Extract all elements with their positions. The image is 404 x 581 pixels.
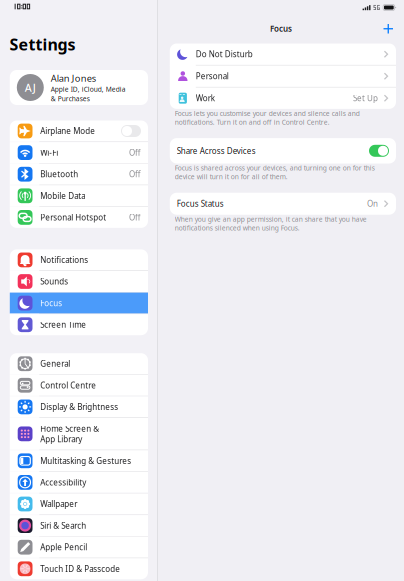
staticText: Off bbox=[129, 212, 141, 223]
button[interactable]: Personal Hotspot bbox=[10, 207, 148, 228]
staticText: Wallpaper bbox=[40, 499, 77, 509]
button[interactable]: Siri & Search bbox=[10, 515, 148, 536]
staticText: Mobile Data bbox=[40, 190, 85, 201]
button[interactable]: Do Not Disturb bbox=[170, 43, 396, 65]
button[interactable]: General bbox=[10, 353, 148, 374]
staticText: Focus lets you customise your devices an… bbox=[175, 109, 360, 127]
staticText: Wi-Fi bbox=[40, 147, 58, 158]
button[interactable]: Share Across Devices bbox=[170, 138, 396, 163]
staticText: Share Across Devices bbox=[177, 145, 256, 156]
button[interactable]: Personal bbox=[170, 65, 396, 87]
button[interactable]: Screen Time bbox=[10, 314, 148, 335]
staticText: AJ bbox=[25, 80, 36, 95]
button[interactable]: Multitasking & Gestures bbox=[10, 450, 148, 471]
button[interactable]: Add Focus bbox=[378, 19, 398, 38]
staticText: Focus Status bbox=[177, 198, 224, 209]
staticText: Focus bbox=[40, 298, 62, 308]
staticText: Alan Jones bbox=[51, 72, 96, 84]
staticText: Apple ID, iCloud, Media bbox=[51, 85, 126, 94]
staticText: Off bbox=[129, 169, 141, 179]
button[interactable]: Bluetooth bbox=[10, 164, 148, 185]
staticText: Set Up bbox=[353, 93, 378, 103]
staticText: Touch ID & Passcode bbox=[40, 563, 120, 574]
button[interactable]: Sounds bbox=[10, 271, 148, 292]
staticText: Personal bbox=[196, 71, 229, 81]
staticText: App Library bbox=[40, 434, 82, 444]
staticText: Multitasking & Gestures bbox=[40, 455, 131, 466]
button[interactable]: Focus bbox=[10, 293, 148, 314]
button[interactable]: Display & Brightness bbox=[10, 396, 148, 417]
staticText: Siri & Search bbox=[40, 520, 86, 531]
button[interactable]: Home Screen & bbox=[10, 418, 148, 450]
staticText: Bluetooth bbox=[40, 169, 78, 179]
button[interactable]: Focus Status bbox=[170, 193, 396, 215]
staticText: Focus is shared across your devices, and… bbox=[175, 163, 375, 181]
button[interactable]: Airplane Mode bbox=[10, 120, 148, 141]
staticText: Accessibility bbox=[40, 477, 86, 488]
staticText: General bbox=[40, 358, 70, 369]
staticText: Settings bbox=[9, 34, 75, 55]
button[interactable]: Touch ID & Passcode bbox=[10, 558, 148, 579]
button[interactable]: Control Centre bbox=[10, 375, 148, 396]
button[interactable]: Apple Pencil bbox=[10, 537, 148, 558]
staticText: When you give an app permission, it can … bbox=[175, 215, 367, 232]
staticText: Apple Pencil bbox=[40, 542, 87, 552]
staticText: Sounds bbox=[40, 276, 68, 287]
button[interactable]: Notifications bbox=[10, 249, 148, 270]
button[interactable]: Accessibility bbox=[10, 472, 148, 493]
staticText: On bbox=[367, 198, 378, 209]
staticText: Display & Brightness bbox=[40, 402, 118, 412]
staticText: Personal Hotspot bbox=[40, 212, 106, 223]
staticText: & Purchases bbox=[51, 94, 90, 103]
button[interactable]: AJ bbox=[10, 70, 148, 105]
staticText: Work bbox=[196, 93, 215, 103]
button[interactable]: Mobile Data bbox=[10, 185, 148, 206]
staticText: Home Screen & bbox=[40, 423, 99, 434]
staticText: Off bbox=[129, 147, 141, 158]
button[interactable]: Work bbox=[170, 87, 396, 109]
staticText: Control Centre bbox=[40, 380, 96, 391]
staticText: Do Not Disturb bbox=[196, 49, 253, 59]
staticText: Notifications bbox=[40, 255, 88, 265]
staticText: Airplane Mode bbox=[40, 126, 95, 136]
staticText: Screen Time bbox=[40, 319, 86, 330]
button[interactable]: Wallpaper bbox=[10, 493, 148, 514]
button[interactable]: Wi-Fi bbox=[10, 142, 148, 163]
staticText: Focus bbox=[270, 23, 292, 34]
